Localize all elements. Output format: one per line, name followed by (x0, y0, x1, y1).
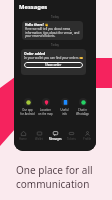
staticText: One place for all (16, 163, 93, 177)
button[interactable]: Hello there! 👋 (22, 21, 83, 40)
staticText: Our app for Android (20, 108, 35, 115)
staticText: Today (14, 43, 96, 47)
staticText: Show order (45, 63, 62, 67)
button[interactable]: Location on the map (37, 98, 54, 115)
button[interactable]: Our app for Android (19, 98, 36, 115)
staticText: Wallet (35, 137, 43, 141)
staticText: Here we will tell you about news, inform… (25, 27, 80, 38)
staticText: Home (19, 137, 27, 141)
staticText: Tickets (67, 137, 76, 141)
staticText: Order added (24, 51, 46, 56)
button[interactable]: Tickets (64, 131, 78, 141)
staticText: Location on the map (38, 108, 53, 115)
staticText: In your wallet you can find your orders … (24, 56, 83, 60)
staticText: Useful info (60, 108, 69, 115)
staticText: Today (14, 15, 96, 19)
staticText: Messages (49, 137, 62, 141)
staticText: Chat in WhatsApp (76, 108, 89, 115)
staticText: Hello there! 👋 (25, 23, 49, 27)
button[interactable]: Messages (48, 131, 62, 141)
button[interactable]: Show order (24, 62, 83, 68)
staticText: Messages (19, 3, 48, 11)
button[interactable]: Chat in WhatsApp (74, 98, 91, 115)
staticText: Profile (83, 137, 92, 141)
button[interactable]: Profile (80, 131, 94, 141)
staticText: communication (16, 177, 90, 191)
button[interactable]: Home (16, 131, 30, 141)
button[interactable]: Useful info (56, 98, 73, 115)
button[interactable]: Wallet (32, 131, 46, 141)
